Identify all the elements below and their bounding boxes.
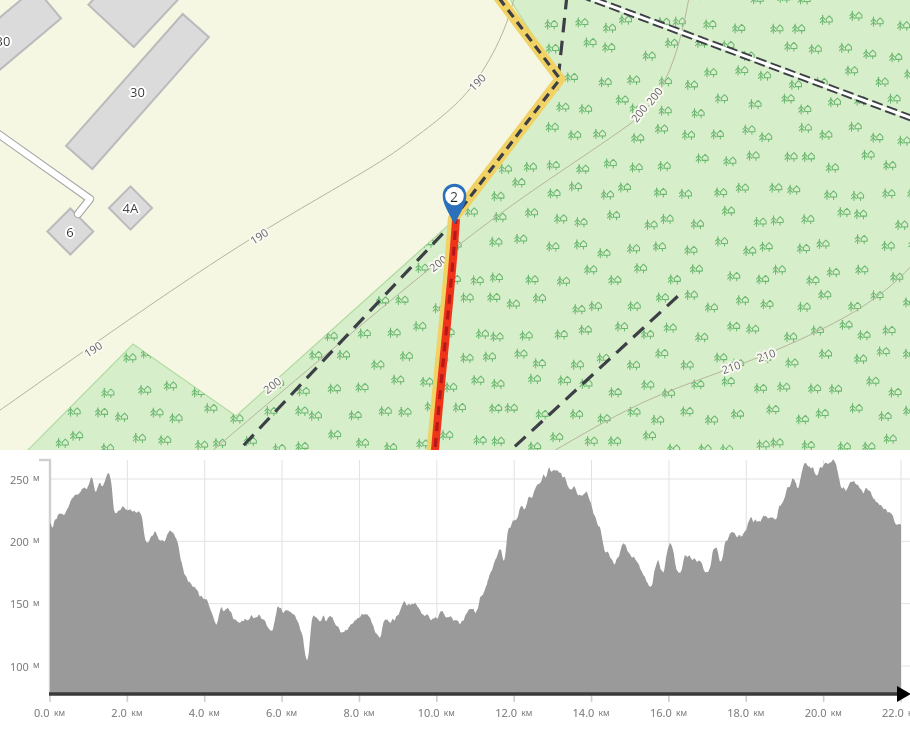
button[interactable]: Map of the route (0, 0, 910, 450)
button[interactable]: Elevation profile (0, 450, 910, 750)
button[interactable]: Waypoint 2 (441, 183, 469, 226)
